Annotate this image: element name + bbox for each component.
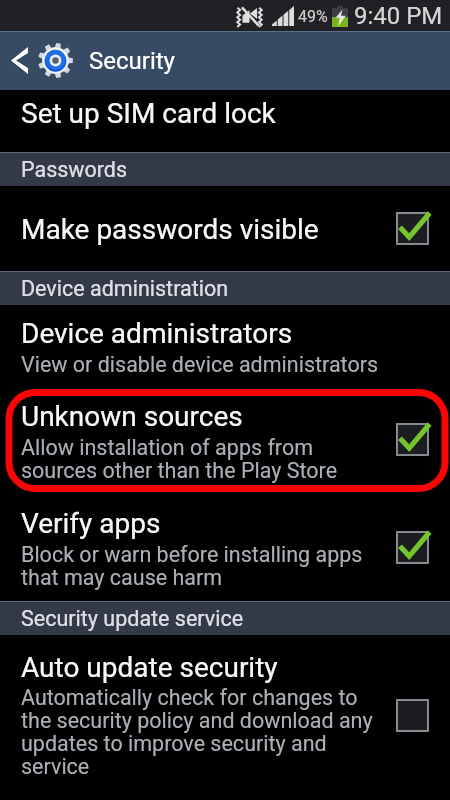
staticText: Make passwords visible [21,213,319,246]
button[interactable]: Navigate up [0,31,38,90]
staticText: Device administration [21,276,229,301]
staticText: 9:40 PM [354,2,443,30]
staticText: Automatically check for changes to the s… [21,687,373,779]
staticText: Unknown sources [21,400,243,433]
button[interactable]: Set up SIM card lock [0,90,450,152]
button[interactable]: Auto update security [0,635,450,795]
button[interactable]: Make passwords visible [0,186,450,271]
button[interactable]: Device administrators [0,305,450,390]
staticText: Verify apps [21,507,161,540]
staticText: Auto update security [21,651,278,684]
button[interactable]: Unknown sources [0,390,450,500]
staticText: Block or warn before installing apps tha… [21,544,363,590]
staticText: Security update service [21,606,244,631]
staticText: Set up SIM card lock [21,97,276,130]
staticText: View or disable device administrators [21,354,379,377]
staticText: Security [89,47,175,75]
staticText: 49% [298,7,328,26]
staticText: Passwords [21,157,128,182]
staticText: Device administrators [21,317,293,350]
staticText: Allow installation of apps from sources … [21,437,338,483]
button[interactable]: Verify apps [0,500,450,601]
